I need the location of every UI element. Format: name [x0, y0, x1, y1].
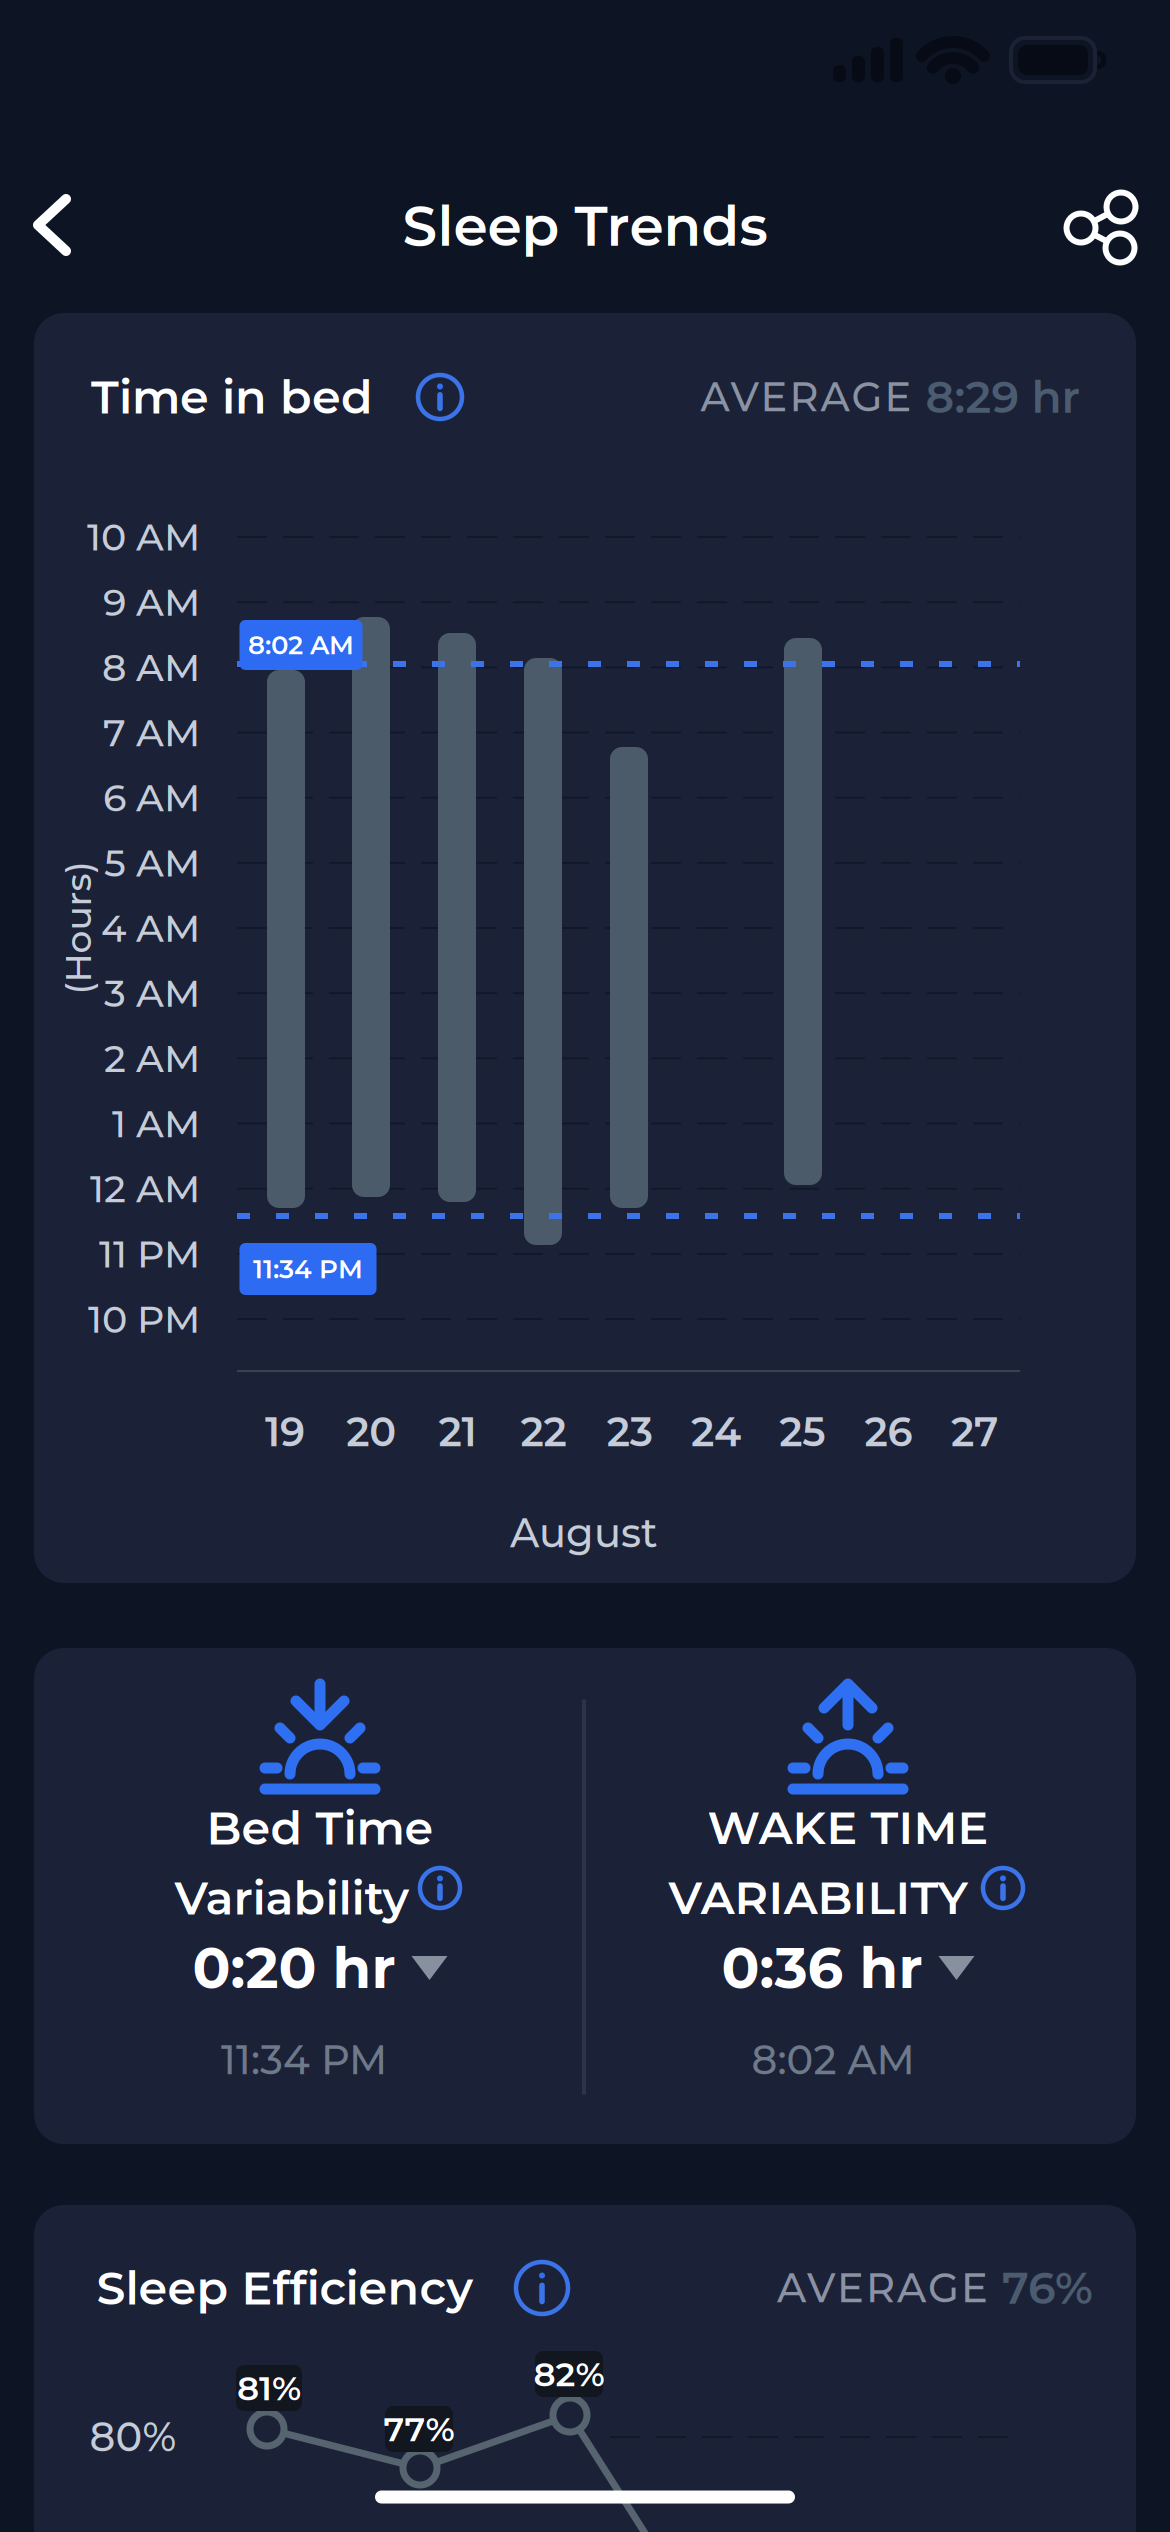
staticText: 9 AM [103, 579, 200, 625]
staticText: 27 [951, 1408, 998, 1456]
staticText: 24 [691, 1408, 741, 1456]
staticText: 10 PM [88, 1296, 200, 1342]
staticText: 0:20 hr [192, 1934, 395, 2002]
staticText: 25 [779, 1408, 825, 1456]
staticText: 20 [346, 1408, 396, 1456]
staticText: Sleep Efficiency [96, 2260, 473, 2316]
staticText: 8:02 AM [751, 2036, 914, 2084]
staticText: VARIABILITY [668, 1870, 967, 1926]
staticText: 2 AM [104, 1035, 200, 1081]
staticText: 3 AM [104, 970, 200, 1016]
staticText: 8:02 AM [248, 629, 354, 661]
staticText: AVERAGE [700, 373, 911, 421]
staticText: 19 [265, 1408, 305, 1456]
staticText: 12 AM [90, 1165, 200, 1212]
staticText: 82% [533, 2353, 604, 2395]
button[interactable]: Wake time variability info [980, 1865, 1026, 1911]
staticText: Variability [174, 1870, 409, 1926]
staticText: Sleep Trends [402, 192, 767, 259]
staticText: 22 [521, 1408, 567, 1456]
staticText: 77% [383, 2408, 454, 2450]
staticText: 4 AM [101, 905, 200, 951]
staticText: 23 [607, 1408, 653, 1456]
staticText: Bed Time [206, 1800, 433, 1856]
button[interactable]: Time in bed info [415, 372, 465, 422]
staticText: AVERAGE [777, 2264, 988, 2312]
staticText: Time in bed [91, 369, 373, 425]
staticText: 26 [864, 1408, 912, 1456]
button[interactable]: Wake time details [721, 1934, 974, 2002]
button[interactable]: Bed time details [192, 1934, 447, 2002]
staticText: 8:29 hr [925, 370, 1079, 424]
staticText: 11:34 PM [253, 1253, 363, 1285]
staticText: 10 AM [87, 514, 200, 560]
staticText: 6 AM [103, 774, 200, 821]
staticText: August [510, 1509, 658, 1557]
staticText: 11 PM [99, 1231, 200, 1277]
button[interactable]: Sleep efficiency info [513, 2259, 571, 2317]
staticText: 1 AM [112, 1100, 200, 1147]
staticText: 21 [438, 1408, 476, 1456]
staticText: 0:36 hr [721, 1934, 922, 2002]
staticText: 11:34 PM [221, 2036, 387, 2084]
staticText: 5 AM [104, 840, 200, 886]
button[interactable]: Bed time variability info [417, 1865, 463, 1911]
staticText: 80% [89, 2413, 176, 2461]
staticText: 81% [237, 2367, 301, 2409]
button[interactable]: Back [33, 194, 71, 256]
staticText: 76% [1002, 2261, 1093, 2315]
staticText: 7 AM [103, 709, 200, 756]
staticText: WAKE TIME [707, 1800, 988, 1856]
button[interactable]: Share [1065, 191, 1139, 265]
staticText: (Hours) [11, 906, 144, 950]
staticText: 8 AM [102, 644, 200, 690]
